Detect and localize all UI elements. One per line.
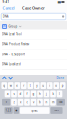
staticText: w xyxy=(10,84,12,87)
staticText: x xyxy=(20,100,21,104)
staticText: DNA Lead Tool xyxy=(2,32,22,36)
staticText: b xyxy=(39,100,41,104)
button[interactable]: f xyxy=(24,90,30,97)
button[interactable]: return xyxy=(50,107,63,114)
staticText: r xyxy=(23,84,24,87)
staticText: m xyxy=(52,100,54,104)
staticText: 123 xyxy=(6,109,12,112)
staticText: ⇧ xyxy=(5,101,7,104)
staticText: i xyxy=(49,84,50,87)
button[interactable]: h xyxy=(37,90,43,97)
button[interactable]: Cancel xyxy=(0,4,17,12)
staticText: o xyxy=(55,84,57,87)
staticText: ✱ xyxy=(15,109,17,112)
button[interactable]: w xyxy=(8,82,14,89)
staticText: Case Owner xyxy=(22,5,45,11)
button[interactable]: DNA Product Review xyxy=(0,39,67,49)
staticText: y xyxy=(36,84,37,87)
staticText: Done xyxy=(56,76,64,80)
button[interactable]: m xyxy=(50,99,56,106)
staticText: t xyxy=(30,84,31,87)
button[interactable]: b xyxy=(37,99,43,106)
button[interactable]: j xyxy=(44,90,49,97)
staticText: c xyxy=(26,100,27,104)
staticText: h xyxy=(39,92,41,96)
staticText: k xyxy=(52,92,53,96)
button[interactable]: Group xyxy=(0,21,67,32)
staticText: DNA xyxy=(3,15,9,18)
button[interactable]: c xyxy=(24,99,30,106)
staticText: d xyxy=(19,92,21,96)
staticText: DNA Localized xyxy=(2,62,21,66)
button[interactable]: space xyxy=(20,107,49,114)
staticText: p xyxy=(62,84,64,87)
button[interactable]: 123 xyxy=(4,107,13,114)
button[interactable]: p xyxy=(60,82,66,89)
button[interactable]: t xyxy=(27,82,33,89)
button[interactable]: Done xyxy=(56,75,64,81)
button[interactable]: y xyxy=(34,82,40,89)
staticText: q xyxy=(3,84,5,87)
button[interactable]: n xyxy=(44,99,49,106)
button[interactable]: DNA Localized xyxy=(0,59,67,69)
button[interactable]: z xyxy=(11,99,17,106)
staticText: u xyxy=(42,84,44,87)
staticText: g xyxy=(32,92,34,96)
button[interactable]: q xyxy=(1,82,7,89)
button[interactable]: k xyxy=(50,90,56,97)
staticText: DNA Product Review xyxy=(2,42,29,46)
staticText: return xyxy=(54,110,59,111)
staticText: ⌫ xyxy=(59,101,63,104)
staticText: n xyxy=(45,100,47,104)
button[interactable]: x xyxy=(18,99,23,106)
button[interactable]: l xyxy=(57,90,62,97)
button[interactable]: e xyxy=(14,82,20,89)
button[interactable]: Previous field xyxy=(2,75,6,81)
staticText: Cancel xyxy=(2,5,14,11)
button[interactable]: g xyxy=(31,90,36,97)
button[interactable]: i xyxy=(47,82,53,89)
button[interactable]: u xyxy=(40,82,46,89)
staticText: 9:41 xyxy=(2,0,9,4)
button[interactable]: ✱ xyxy=(14,107,19,114)
button[interactable]: s xyxy=(11,90,17,97)
button[interactable]: DNA Lead Tool xyxy=(0,29,67,39)
button[interactable]: v xyxy=(31,99,36,106)
button[interactable]: Next field xyxy=(9,75,12,81)
staticText: v xyxy=(33,100,34,104)
button[interactable]: Clear text xyxy=(62,15,64,18)
staticText: f xyxy=(26,92,27,96)
button[interactable]: ⇧ xyxy=(2,99,10,106)
button[interactable]: r xyxy=(21,82,27,89)
staticText: DNA - TL Support xyxy=(2,52,25,56)
staticText: a xyxy=(7,92,8,96)
staticText: e xyxy=(16,84,18,87)
button[interactable]: o xyxy=(53,82,59,89)
button[interactable]: d xyxy=(18,90,23,97)
button[interactable]: a xyxy=(5,90,10,97)
button[interactable]: DNA - TL Support xyxy=(0,49,67,59)
staticText: ▮▮▮ xyxy=(58,0,61,3)
staticText: space xyxy=(31,109,38,112)
staticText: Group xyxy=(8,25,17,28)
button[interactable]: ⌫ xyxy=(57,99,65,106)
staticText: j xyxy=(46,92,47,96)
staticText: l xyxy=(59,92,60,96)
